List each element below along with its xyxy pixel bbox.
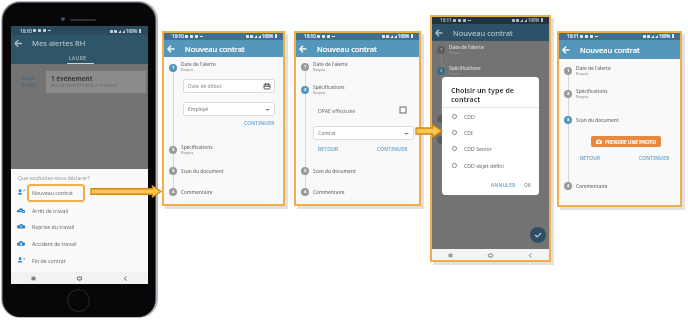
- button[interactable]: CDI: [442, 124, 539, 140]
- button[interactable]: CDD Senior: [442, 140, 539, 156]
- button[interactable]: CDD objet défini: [442, 157, 539, 173]
- staticText: 100%: [528, 17, 540, 23]
- staticText: CDI: [464, 129, 473, 136]
- staticText: Commentaire: [181, 189, 213, 196]
- button[interactable]: CDD: [442, 108, 539, 124]
- button[interactable]: OK: [524, 182, 532, 189]
- staticText: Requis: [313, 67, 326, 72]
- staticText: Employé: [188, 106, 209, 113]
- staticText: Commentaire: [313, 189, 345, 196]
- staticText: 51983: [21, 81, 36, 88]
- staticText: Spécifications: [576, 88, 608, 95]
- button[interactable]: RETOUR: [580, 155, 601, 162]
- staticText: Date de début: [188, 83, 222, 90]
- staticText: Nouveau contrat: [317, 44, 377, 54]
- button[interactable]: RETOUR: [318, 146, 339, 153]
- staticText: Fin de contrat: [32, 257, 66, 264]
- staticText: 2: [567, 91, 570, 97]
- staticText: Date de l'alerte: [181, 61, 216, 68]
- button[interactable]: DPAE effectuée: [318, 105, 406, 115]
- staticText: 100%: [398, 33, 410, 39]
- staticText: Requis: [181, 67, 194, 72]
- staticText: 100%: [126, 28, 138, 34]
- button[interactable]: Back: [298, 44, 308, 54]
- staticText: 1: [440, 47, 443, 53]
- staticText: Mars: [22, 74, 35, 81]
- button[interactable]: Validate: [530, 227, 546, 243]
- staticText: Nouveau contrat: [185, 44, 245, 54]
- button[interactable]: Back: [434, 28, 444, 38]
- staticText: Requis: [449, 50, 462, 55]
- button[interactable]: Fin de contrat: [11, 252, 148, 269]
- staticText: 4: [304, 189, 307, 195]
- button[interactable]: Contrat: [313, 126, 414, 140]
- button[interactable]: Nouveau contrat: [11, 184, 148, 201]
- staticText: 10:10: [172, 33, 184, 39]
- button[interactable]: Recent apps: [431, 249, 470, 261]
- staticText: Requis: [313, 90, 326, 95]
- staticText: Nouveau contrat: [453, 28, 513, 38]
- staticText: 10:10: [20, 28, 32, 34]
- button[interactable]: CONTINUER: [377, 146, 408, 153]
- staticText: 3: [304, 168, 307, 174]
- button[interactable]: Home: [470, 249, 510, 261]
- button[interactable]: Recent apps: [11, 272, 56, 284]
- staticText: 2: [172, 147, 175, 153]
- staticText: 4: [567, 183, 570, 189]
- button[interactable]: Employé: [183, 102, 275, 116]
- staticText: Spécifications: [449, 65, 481, 72]
- staticText: Scan du document: [313, 168, 356, 175]
- staticText: 2: [440, 68, 443, 74]
- button[interactable]: CONTINUER: [639, 155, 670, 162]
- staticText: Que souhaitez-vous déclarer?: [18, 174, 90, 181]
- button[interactable]: ANNULER: [491, 182, 516, 189]
- button[interactable]: PRENDRE UNE PHOTO: [591, 136, 661, 147]
- staticText: 1: [567, 68, 570, 74]
- staticText: CDD objet défini: [464, 162, 504, 169]
- staticText: Accident de travail: [32, 240, 77, 247]
- staticText: 100%: [262, 33, 274, 39]
- staticText: Contrat: [318, 130, 336, 137]
- button[interactable]: Reprise du travail: [11, 218, 148, 235]
- button[interactable]: Back: [102, 272, 148, 284]
- staticText: Date de l'alerte: [449, 44, 484, 51]
- staticText: Commentaire: [576, 183, 608, 190]
- staticText: Requis: [181, 150, 194, 155]
- button[interactable]: Back: [166, 44, 176, 54]
- button[interactable]: Home: [56, 272, 102, 284]
- staticText: Requis: [576, 94, 589, 99]
- staticText: Date de l'alerte: [576, 65, 611, 72]
- staticText: 100%: [659, 33, 671, 39]
- button[interactable]: Arrêt de travail: [11, 202, 148, 219]
- staticText: Choisir un type de: [451, 86, 515, 96]
- staticText: Spécifications: [181, 144, 213, 151]
- staticText: Spécifications: [313, 84, 345, 91]
- staticText: 10:11: [440, 17, 452, 23]
- staticText: 2: [304, 87, 307, 93]
- staticText: 10:10: [304, 33, 316, 39]
- button[interactable]: Accident de travail: [11, 235, 148, 252]
- staticText: 3: [172, 168, 175, 174]
- button[interactable]: Back: [561, 45, 571, 55]
- button[interactable]: 1 événement: [46, 71, 146, 93]
- staticText: Requis: [576, 71, 589, 76]
- staticText: LAURE: [69, 55, 87, 62]
- button[interactable]: CONTINUER: [244, 120, 275, 127]
- button[interactable]: Back: [510, 249, 550, 261]
- staticText: 3: [567, 117, 570, 123]
- staticText: 1 événement: [51, 74, 93, 83]
- staticText: CDD Senior: [464, 145, 492, 152]
- staticText: Aucun événement à envoyer: [51, 82, 118, 89]
- staticText: 10:11: [567, 33, 579, 39]
- staticText: 1: [304, 64, 307, 70]
- staticText: Requis: [449, 71, 462, 76]
- staticText: 4: [172, 189, 175, 195]
- staticText: PRENDRE UNE PHOTO: [605, 139, 656, 145]
- staticText: contract: [451, 95, 481, 105]
- staticText: Nouveau contrat: [32, 189, 73, 196]
- button[interactable]: Date de début: [183, 79, 275, 93]
- button[interactable]: Back: [13, 38, 24, 49]
- staticText: Mes alertes RH: [32, 38, 86, 48]
- staticText: CDD: [464, 113, 475, 120]
- staticText: Date de l'alerte: [313, 61, 348, 68]
